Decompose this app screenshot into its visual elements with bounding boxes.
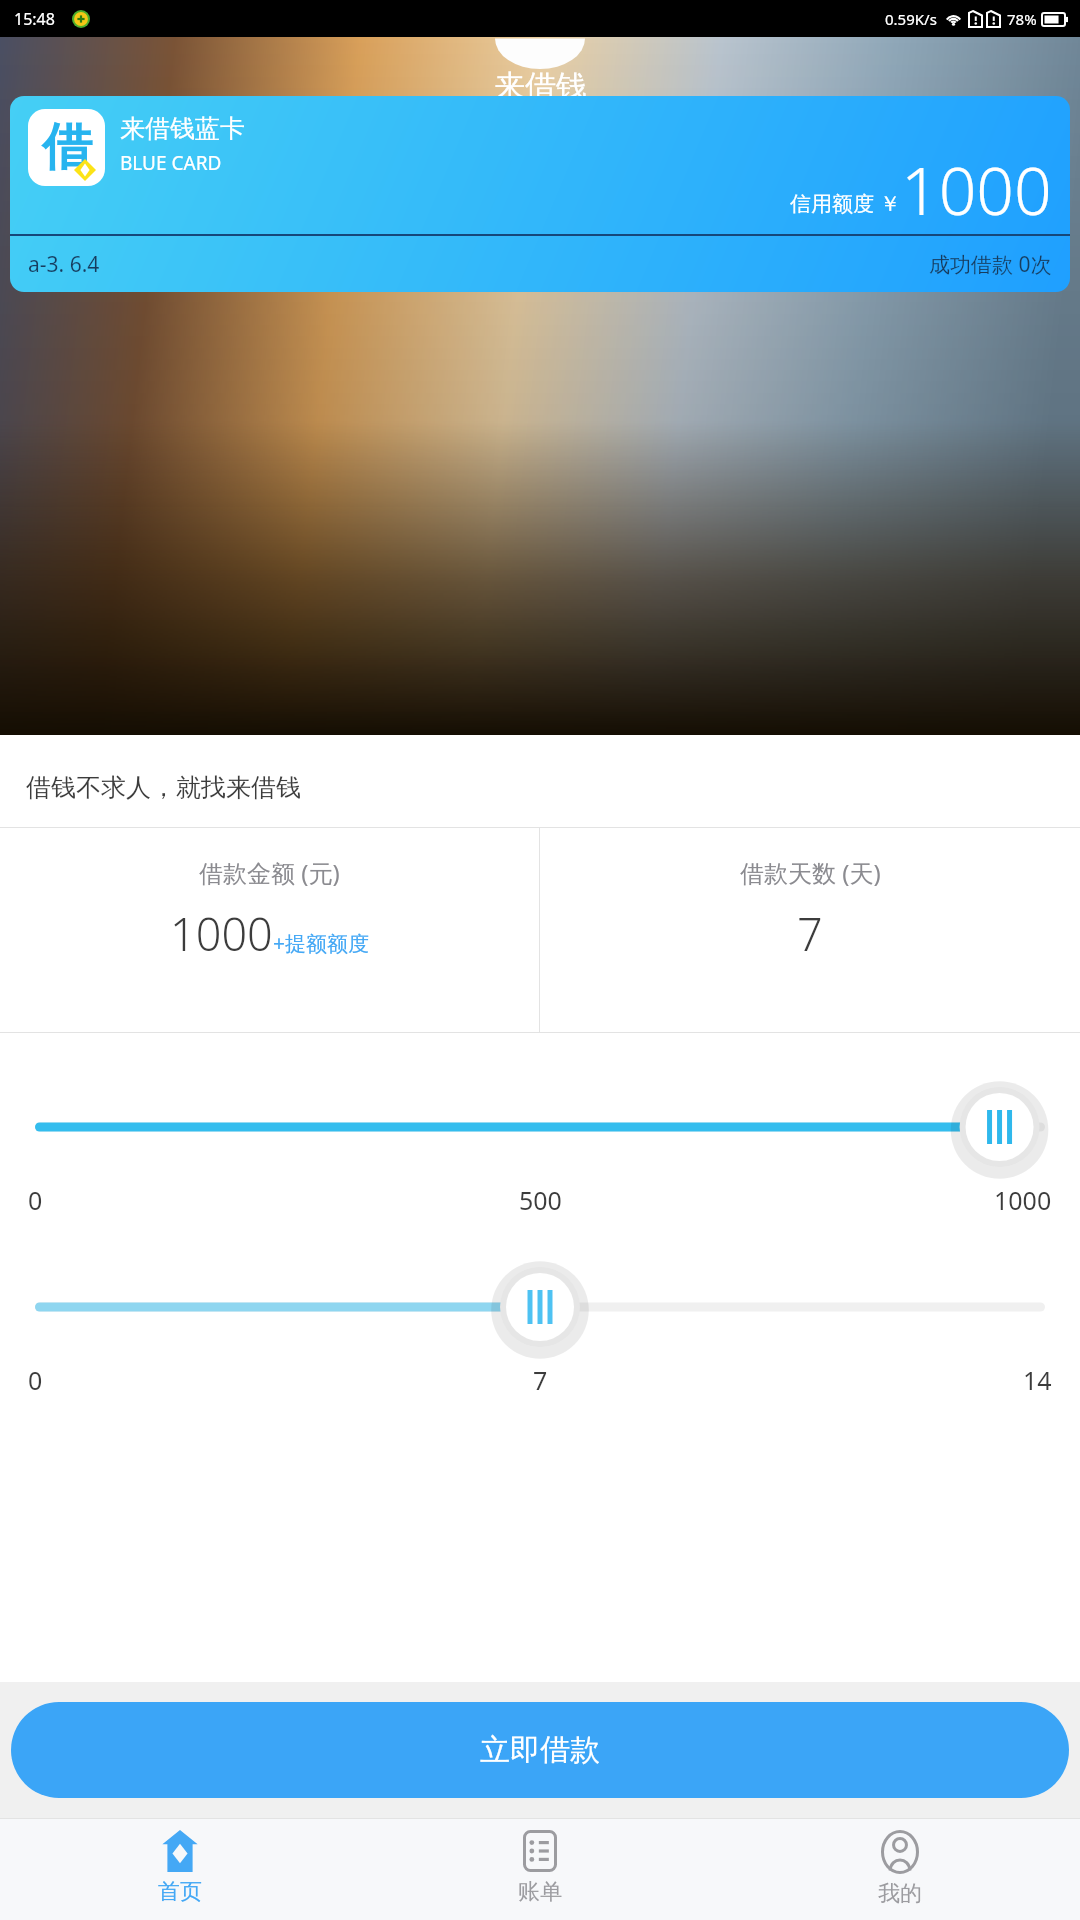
staticText: BLUE CARD [120, 150, 222, 176]
staticText: a-3. 6.4 [28, 250, 100, 279]
staticText: 成功借款 0次 [929, 250, 1052, 279]
button[interactable]: 首页 [0, 1819, 360, 1920]
staticText: 借钱不求人，就找来借钱 [26, 772, 301, 803]
staticText: 0 [28, 1363, 43, 1397]
staticText: 来借钱 [494, 67, 587, 106]
staticText: 信用额度 ￥ [790, 189, 901, 218]
button[interactable]: 借 [10, 96, 1070, 292]
staticText: 7 [797, 903, 823, 964]
button[interactable]: 借款天数 (天) [540, 828, 1080, 1032]
staticText: 14 [1023, 1363, 1052, 1397]
staticText: 来借钱蓝卡 [120, 113, 245, 144]
button[interactable]: 立即借款 [11, 1702, 1069, 1798]
staticText: 1000 [994, 1183, 1052, 1217]
staticText: 15:48 [14, 8, 55, 30]
staticText: 借款天数 (天) [740, 856, 881, 889]
button[interactable]: 我的 [720, 1819, 1080, 1920]
staticText: 500 [519, 1183, 562, 1217]
staticText: +提额额度 [273, 929, 370, 958]
staticText: 0 [28, 1183, 43, 1217]
staticText: 78% [1007, 9, 1037, 29]
staticText: 账单 [518, 1878, 562, 1906]
staticText: 1000 [901, 144, 1052, 234]
staticText: 7 [533, 1363, 548, 1397]
staticText: 立即借款 [480, 1731, 600, 1769]
button[interactable]: 账单 [360, 1819, 720, 1920]
staticText: 借 [42, 116, 92, 179]
button[interactable] [35, 1265, 1045, 1349]
staticText: 0.59K/s [885, 9, 937, 29]
staticText: 首页 [158, 1878, 202, 1906]
staticText: 借款金额 (元) [199, 856, 340, 889]
button[interactable]: 借款金额 (元) [0, 828, 539, 1032]
staticText: 我的 [878, 1880, 922, 1908]
staticText: 1000 [170, 903, 273, 964]
button[interactable] [35, 1085, 1045, 1169]
